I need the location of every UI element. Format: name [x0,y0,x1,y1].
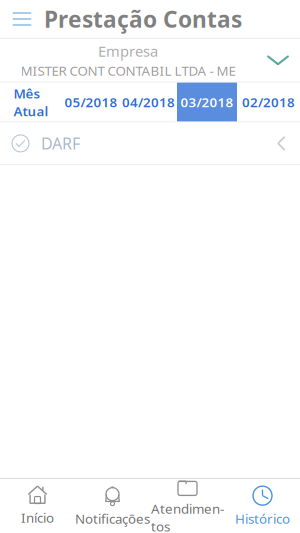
staticText: Mês Atual [13,84,48,120]
staticText: 03/2018 [180,93,233,111]
button[interactable]: 04/2018 [120,83,177,122]
button[interactable]: Empresa [0,39,300,82]
button[interactable]: DARF [0,122,300,164]
staticText: Notificações [75,510,150,527]
staticText: Início [21,509,54,526]
button[interactable]: 03/2018 [177,83,237,122]
button[interactable]: Mês Atual [0,83,62,122]
staticText: Atendimentos [151,500,224,533]
staticText: Histórico [235,510,290,527]
staticText: MISTER CONT CONTABIL LTDA - ME [20,62,235,79]
staticText: 02/2018 [242,93,295,111]
staticText: Empresa [98,41,158,61]
staticText: 04/2018 [122,93,175,111]
button[interactable]: 02/2018 [237,83,300,122]
button[interactable]: Início [0,480,75,532]
button[interactable]: Atendimentos [150,471,225,533]
staticText: DARF [41,133,80,154]
button[interactable]: Histórico [225,479,300,533]
staticText: Prestação Contas [44,4,242,34]
button[interactable]: Menu [0,0,44,38]
button[interactable]: 05/2018 [62,83,120,122]
button[interactable]: Notificações [75,479,150,533]
staticText: 05/2018 [64,93,117,111]
